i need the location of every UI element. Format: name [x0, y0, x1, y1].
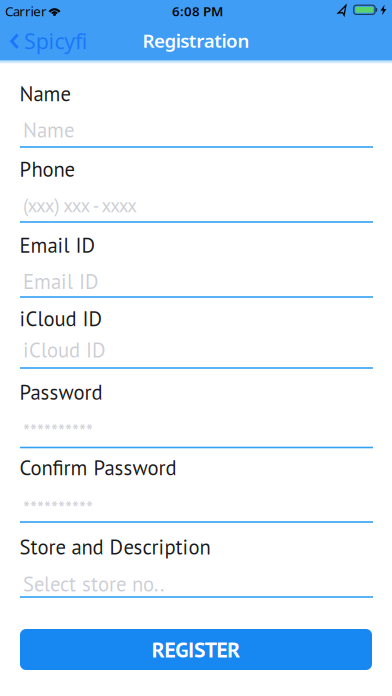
staticText: Name: [19, 80, 70, 107]
staticText: * * * * * * * * * *: [23, 418, 93, 444]
staticText: Email ID: [19, 232, 95, 258]
staticText: * * * * * * * * * *: [23, 495, 93, 521]
staticText: Password: [19, 379, 102, 405]
staticText: 6:08 PM: [172, 2, 223, 20]
staticText: Name: [23, 116, 74, 143]
button[interactable]: REGISTER: [20, 629, 372, 670]
button[interactable]: Name: [20, 102, 373, 148]
button[interactable]: Password: [20, 402, 373, 448]
button[interactable]: Phone: [20, 177, 373, 223]
button[interactable]: Email ID: [20, 252, 373, 298]
staticText: Spicyfi: [24, 27, 88, 55]
staticText: Phone: [19, 156, 74, 182]
button[interactable]: iCloud ID: [20, 323, 373, 369]
staticText: Carrier: [5, 2, 47, 20]
staticText: REGISTER: [152, 635, 240, 663]
staticText: Select store no..: [23, 570, 164, 597]
button[interactable]: Store and Description: [20, 552, 373, 598]
staticText: Registration: [142, 28, 249, 53]
staticText: Store and Description: [19, 533, 210, 560]
staticText: iCloud ID: [23, 336, 106, 363]
staticText: Email ID: [23, 268, 99, 295]
button[interactable]: Confirm Password: [20, 477, 373, 523]
button[interactable]: Back: [10, 24, 100, 58]
staticText: iCloud ID: [19, 305, 102, 332]
staticText: Confirm Password: [19, 454, 176, 481]
staticText: (xxx) xxx - xxxx: [23, 193, 137, 218]
